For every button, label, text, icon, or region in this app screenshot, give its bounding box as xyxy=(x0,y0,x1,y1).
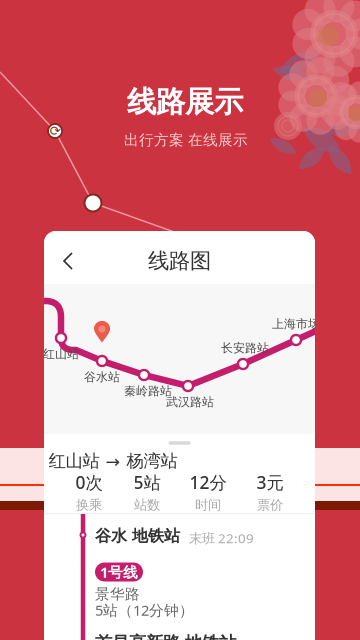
button[interactable]: 首昌高新路 地铁站 xyxy=(44,626,315,640)
staticText: 3元 xyxy=(256,471,283,494)
staticText: 时间 xyxy=(195,497,221,513)
staticText: 谷水 地铁站 xyxy=(95,526,180,546)
staticText: 红山站 xyxy=(43,347,79,361)
staticText: 12分 xyxy=(189,471,226,494)
staticText: 上海市场站 xyxy=(272,317,332,331)
staticText: 1号线 xyxy=(100,562,138,582)
staticText: 出行方案 在线展示 xyxy=(124,131,248,149)
staticText: 谷水站 xyxy=(84,370,120,384)
staticText: 换乘 xyxy=(76,497,102,513)
staticText: 站数 xyxy=(134,497,160,513)
staticText: 秦岭路站 xyxy=(124,384,172,398)
button[interactable]: 谷水 地铁站 xyxy=(44,514,315,626)
staticText: 景华路 xyxy=(95,585,140,603)
button[interactable]: Back xyxy=(49,239,87,283)
staticText: 0次 xyxy=(75,471,102,494)
staticText: 末班 22:09 xyxy=(189,529,254,547)
staticText: 红山站 → 杨湾站 xyxy=(48,450,177,472)
staticText: 线路图 xyxy=(148,248,211,274)
staticText: 长安路站 xyxy=(221,341,269,355)
staticText: 5站 xyxy=(133,471,160,494)
staticText: 线路展示 xyxy=(127,84,243,120)
staticText: 票价 xyxy=(257,497,283,513)
staticText: 5站（12分钟） xyxy=(95,600,194,620)
staticText: ⟳ xyxy=(49,123,60,138)
staticText: 武汉路站 xyxy=(166,395,214,409)
staticText: 首昌高新路 地铁站 xyxy=(95,632,236,640)
